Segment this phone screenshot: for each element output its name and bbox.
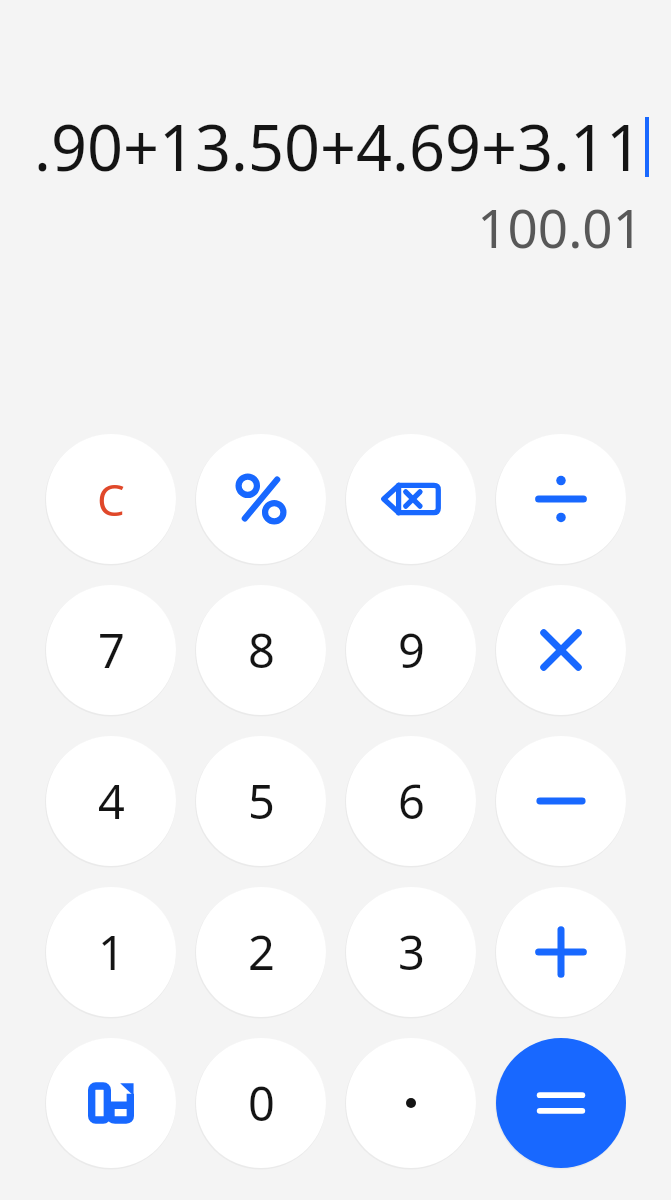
button[interactable]: 4 [46, 736, 176, 866]
button[interactable]: 9 [346, 585, 476, 715]
button[interactable]: Divide [496, 434, 626, 564]
staticText: 1 [98, 920, 125, 984]
button[interactable]: 5 [196, 736, 326, 866]
button[interactable]: 1 [46, 887, 176, 1017]
button[interactable]: Backspace [346, 434, 476, 564]
staticText: 0 [248, 1071, 275, 1135]
button[interactable]: Equals [496, 1038, 626, 1168]
staticText: 6 [398, 769, 425, 833]
staticText: 3 [398, 920, 425, 984]
button[interactable]: 0 [196, 1038, 326, 1168]
staticText: 9 [398, 618, 425, 682]
button[interactable]: C [46, 434, 176, 564]
staticText: 2 [248, 920, 275, 984]
staticText: 100.01 [20, 191, 643, 263]
staticText: 5 [248, 769, 275, 833]
button[interactable]: 7 [46, 585, 176, 715]
staticText: .90+13.50+4.69+3.11 [34, 104, 643, 190]
button[interactable]: Multiply [496, 585, 626, 715]
button[interactable]: 2 [196, 887, 326, 1017]
button[interactable]: Percent [196, 434, 326, 564]
button[interactable]: Minus [496, 736, 626, 866]
button[interactable]: 6 [346, 736, 476, 866]
staticText: 4 [98, 769, 125, 833]
staticText: 8 [248, 618, 275, 682]
button[interactable]: Decimal point [346, 1038, 476, 1168]
button[interactable]: History [46, 1038, 176, 1168]
staticText: 7 [98, 618, 125, 682]
button[interactable]: Plus [496, 887, 626, 1017]
staticText: C [97, 469, 125, 529]
button[interactable]: 8 [196, 585, 326, 715]
button[interactable]: 3 [346, 887, 476, 1017]
